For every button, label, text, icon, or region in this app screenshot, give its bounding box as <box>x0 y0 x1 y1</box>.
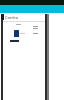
staticText: Carrito <box>5 15 19 20</box>
